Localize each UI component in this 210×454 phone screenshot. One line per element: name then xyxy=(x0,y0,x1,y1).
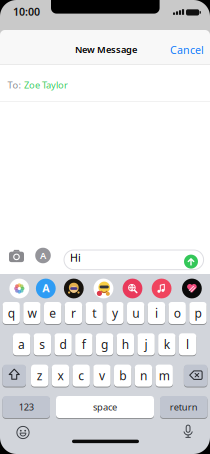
button[interactable]: 123 xyxy=(2,395,50,418)
button[interactable]: i xyxy=(148,301,165,324)
button[interactable]: d xyxy=(54,333,72,356)
button[interactable]: Delete xyxy=(184,364,207,387)
button[interactable]: m xyxy=(155,364,173,387)
staticText: a xyxy=(18,336,25,352)
button[interactable]: z xyxy=(31,364,48,387)
button[interactable]: Photos xyxy=(9,279,29,298)
button[interactable]: Dictate xyxy=(182,425,194,439)
button[interactable]: a xyxy=(13,333,30,356)
button[interactable]: u xyxy=(127,301,144,324)
button[interactable]: Music xyxy=(152,279,171,298)
button[interactable]: f xyxy=(75,333,92,356)
button[interactable]: n xyxy=(135,364,152,387)
staticText: space xyxy=(93,401,117,413)
staticText: d xyxy=(60,336,67,352)
staticText: r xyxy=(71,305,76,321)
staticText: x xyxy=(57,368,63,383)
button[interactable]: Emoji xyxy=(16,425,30,439)
button[interactable]: s xyxy=(34,333,51,356)
button[interactable]: r xyxy=(65,301,82,324)
staticText: c xyxy=(78,368,84,383)
button[interactable]: Camera xyxy=(8,248,25,264)
button[interactable]: Search images xyxy=(123,279,142,298)
staticText: n xyxy=(140,368,147,383)
staticText: y xyxy=(112,305,118,321)
staticText: s xyxy=(39,336,45,352)
button[interactable]: To: xyxy=(0,67,210,103)
button[interactable]: Cancel xyxy=(167,41,207,59)
staticText: Hi xyxy=(70,250,81,265)
staticText: f xyxy=(82,336,86,352)
button[interactable]: h xyxy=(117,333,134,356)
staticText: i xyxy=(155,305,158,321)
button[interactable]: Digital Touch xyxy=(182,279,202,298)
staticText: k xyxy=(164,336,170,352)
button[interactable]: Send xyxy=(183,254,198,269)
button[interactable]: g xyxy=(96,333,113,356)
staticText: A xyxy=(40,249,46,262)
button[interactable]: p xyxy=(189,301,207,324)
staticText: m xyxy=(159,368,170,383)
staticText: b xyxy=(119,368,126,383)
staticText: p xyxy=(194,305,201,321)
button[interactable]: c xyxy=(72,364,90,387)
button[interactable]: b xyxy=(114,364,131,387)
button[interactable]: o xyxy=(168,301,186,324)
staticText: h xyxy=(122,336,129,352)
button[interactable]: w xyxy=(23,301,41,324)
button[interactable]: space xyxy=(56,395,154,418)
button[interactable]: y xyxy=(106,301,124,324)
staticText: A xyxy=(42,281,49,295)
staticText: w xyxy=(27,305,36,321)
staticText: z xyxy=(37,368,43,383)
staticText: 10:00 xyxy=(13,4,40,19)
button[interactable]: j xyxy=(137,333,155,356)
staticText: v xyxy=(99,368,105,383)
button[interactable]: k xyxy=(158,333,176,356)
staticText: e xyxy=(49,305,56,321)
button[interactable]: x xyxy=(52,364,69,387)
staticText: q xyxy=(8,305,15,321)
staticText: l xyxy=(186,336,189,352)
button[interactable]: l xyxy=(179,333,196,356)
staticText: 123 xyxy=(19,401,34,413)
staticText: u xyxy=(132,305,139,321)
button[interactable]: App Store xyxy=(36,279,56,298)
staticText: To: xyxy=(7,79,21,91)
button[interactable]: q xyxy=(2,301,20,324)
button[interactable]: e xyxy=(44,301,61,324)
button[interactable]: Memoji xyxy=(64,279,84,298)
staticText: o xyxy=(174,305,181,321)
staticText: New Message xyxy=(75,43,137,56)
staticText: j xyxy=(145,336,148,352)
staticText: Zoe Taylor xyxy=(24,79,68,91)
button[interactable]: t xyxy=(85,301,103,324)
button[interactable]: Shift xyxy=(2,364,26,387)
button[interactable]: Stickers xyxy=(94,279,113,298)
button[interactable]: Apps xyxy=(35,247,51,263)
button[interactable]: return xyxy=(160,395,207,418)
staticText: g xyxy=(101,336,108,352)
staticText: t xyxy=(92,305,96,321)
button[interactable]: v xyxy=(93,364,111,387)
staticText: return xyxy=(170,401,198,413)
staticText: Cancel xyxy=(170,43,204,57)
